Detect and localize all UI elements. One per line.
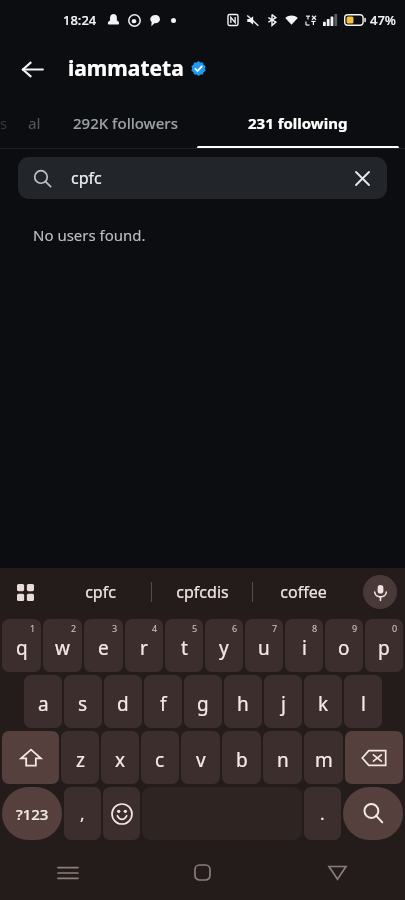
staticText: 5 [192, 622, 198, 634]
staticText: q [16, 635, 28, 661]
staticText: 18:24 [63, 11, 97, 29]
staticText: iammateta [68, 54, 184, 83]
staticText: f [160, 691, 167, 717]
button[interactable]: k [304, 675, 342, 728]
button[interactable]: d [104, 675, 142, 728]
button[interactable]: cpfcdis [152, 568, 252, 616]
staticText: 47% [370, 11, 396, 29]
staticText: z [76, 747, 85, 773]
staticText: cpfcdis [176, 581, 229, 603]
button[interactable]: Back [270, 845, 405, 900]
button[interactable]: v [181, 731, 220, 784]
button[interactable]: f [144, 675, 182, 728]
button[interactable]: a [24, 675, 62, 728]
staticText: . [320, 802, 325, 825]
button[interactable]: Home [135, 845, 270, 900]
staticText: d [117, 691, 129, 717]
button[interactable]: b [222, 731, 261, 784]
button[interactable]: r [125, 619, 163, 672]
button[interactable]: n [263, 731, 302, 784]
button[interactable]: . [304, 787, 341, 840]
button[interactable]: Recents [0, 845, 135, 900]
button[interactable]: w [43, 619, 82, 672]
staticText: t [181, 635, 188, 661]
staticText: b [236, 747, 248, 773]
staticText: w [55, 635, 70, 661]
button[interactable]: i [285, 619, 323, 672]
button[interactable]: 231 following [191, 97, 405, 149]
button[interactable]: u [245, 619, 283, 672]
staticText: 0 [392, 622, 398, 634]
staticText: e [98, 635, 109, 661]
staticText: p [378, 635, 390, 661]
staticText: cpfc [85, 581, 116, 603]
button[interactable]: y [205, 619, 243, 672]
staticText: 1 [30, 622, 36, 634]
staticText: v [196, 747, 206, 773]
staticText: r [140, 635, 148, 661]
staticText: u [258, 635, 270, 661]
staticText: n [277, 747, 289, 773]
staticText: k [318, 691, 329, 717]
button[interactable]: h [224, 675, 262, 728]
button[interactable]: o [325, 619, 363, 672]
staticText: ?123 [16, 804, 49, 824]
button[interactable]: cpfc [50, 568, 151, 616]
staticText: l [361, 691, 366, 717]
staticText: y [219, 635, 229, 661]
button[interactable]: x [101, 731, 139, 784]
staticText: h [237, 691, 249, 717]
staticText: x [115, 747, 126, 773]
button[interactable]: s [64, 675, 102, 728]
button[interactable]: Search [343, 787, 403, 840]
staticText: 3 [112, 622, 118, 634]
button[interactable]: , [64, 787, 101, 840]
staticText: g [197, 691, 209, 717]
button[interactable]: cpfc [18, 157, 387, 199]
staticText: coffee [280, 581, 327, 603]
button[interactable]: coffee [253, 568, 353, 616]
button[interactable]: Voice input [363, 575, 397, 609]
staticText: s [78, 691, 88, 717]
button[interactable]: ?123 [2, 787, 62, 840]
button[interactable]: j [264, 675, 302, 728]
staticText: a [38, 691, 49, 717]
button[interactable]: Clear search [345, 161, 379, 195]
button[interactable]: Emoji [103, 787, 140, 840]
staticText: cpfc [71, 167, 102, 189]
button[interactable]: 292K followers [60, 97, 191, 149]
button[interactable]: q [2, 619, 41, 672]
button[interactable]: l [344, 675, 382, 728]
staticText: 6 [232, 622, 238, 634]
button[interactable]: Toolbar [6, 573, 44, 611]
button[interactable]: p [365, 619, 403, 672]
staticText: i [302, 635, 307, 661]
button[interactable]: z [61, 731, 99, 784]
staticText: al [28, 113, 41, 133]
staticText: s [0, 113, 8, 133]
staticText: 292K followers [73, 113, 178, 133]
staticText: o [338, 635, 350, 661]
button[interactable]: Backspace [345, 731, 403, 784]
staticText: 4 [152, 622, 158, 634]
button[interactable]: g [184, 675, 222, 728]
staticText: 8 [312, 622, 318, 634]
staticText: 2 [71, 622, 77, 634]
button[interactable]: Back [8, 45, 56, 93]
staticText: 7 [272, 622, 278, 634]
button[interactable]: c [141, 731, 179, 784]
staticText: j [281, 691, 286, 717]
button[interactable]: t [165, 619, 203, 672]
staticText: c [155, 747, 165, 773]
staticText: 9 [352, 622, 358, 634]
staticText: No users found. [33, 225, 146, 245]
button[interactable]: Shift [2, 731, 59, 784]
button[interactable]: e [84, 619, 123, 672]
staticText: 231 following [248, 113, 348, 133]
button[interactable]: m [304, 731, 343, 784]
staticText: m [315, 747, 333, 773]
staticText: , [80, 802, 85, 825]
